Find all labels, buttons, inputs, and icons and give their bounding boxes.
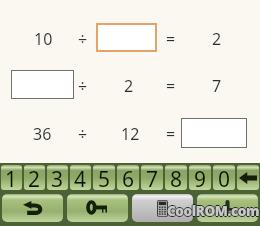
button[interactable]: 6 xyxy=(117,165,139,190)
button[interactable]: Calculator xyxy=(132,194,193,222)
button[interactable]: 0 xyxy=(213,165,235,190)
staticText: 36 xyxy=(33,123,52,145)
staticText: 1 xyxy=(5,165,18,190)
button[interactable]: 2 xyxy=(24,165,45,190)
button[interactable]: Undo xyxy=(2,194,63,222)
button[interactable]: 5 xyxy=(93,165,115,190)
staticText: 10 xyxy=(34,28,53,50)
staticText: 8 xyxy=(170,165,183,190)
staticText: CoolROM.com xyxy=(168,202,260,220)
button[interactable]: Submit xyxy=(197,194,258,222)
staticText: = xyxy=(166,123,176,145)
staticText: 3 xyxy=(51,165,64,190)
staticText: CoolROM.com xyxy=(167,202,260,220)
staticText: ÷ xyxy=(78,123,88,145)
button[interactable]: 3 xyxy=(47,165,68,190)
button[interactable]: Backspace xyxy=(237,165,259,190)
staticText: 6 xyxy=(122,165,135,190)
staticText: 4 xyxy=(74,165,87,190)
button[interactable]: 9 xyxy=(189,165,211,190)
staticText: 2 xyxy=(212,28,222,50)
staticText: = xyxy=(166,28,176,50)
button[interactable]: 4 xyxy=(70,165,91,190)
button[interactable]: 8 xyxy=(165,165,187,190)
staticText: ÷ xyxy=(78,75,88,97)
staticText: 2 xyxy=(28,165,41,190)
button[interactable] xyxy=(181,118,247,148)
staticText: 7 xyxy=(146,165,159,190)
staticText: CoolROM.com xyxy=(167,201,260,219)
staticText: CoolROM.com xyxy=(166,202,259,220)
staticText: = xyxy=(166,75,176,97)
button[interactable]: 7 xyxy=(141,165,163,190)
button[interactable]: 1 xyxy=(1,165,22,190)
staticText: CoolROM.com xyxy=(167,203,260,221)
button[interactable]: Answer key xyxy=(67,194,128,222)
button[interactable] xyxy=(96,23,157,52)
staticText: 9 xyxy=(194,165,207,190)
staticText: 12 xyxy=(121,123,140,145)
staticText: ÷ xyxy=(78,28,88,50)
button[interactable] xyxy=(11,70,74,99)
staticText: 0 xyxy=(218,165,231,190)
staticText: 2 xyxy=(124,75,134,97)
staticText: 7 xyxy=(212,75,222,97)
staticText: 5 xyxy=(98,165,111,190)
